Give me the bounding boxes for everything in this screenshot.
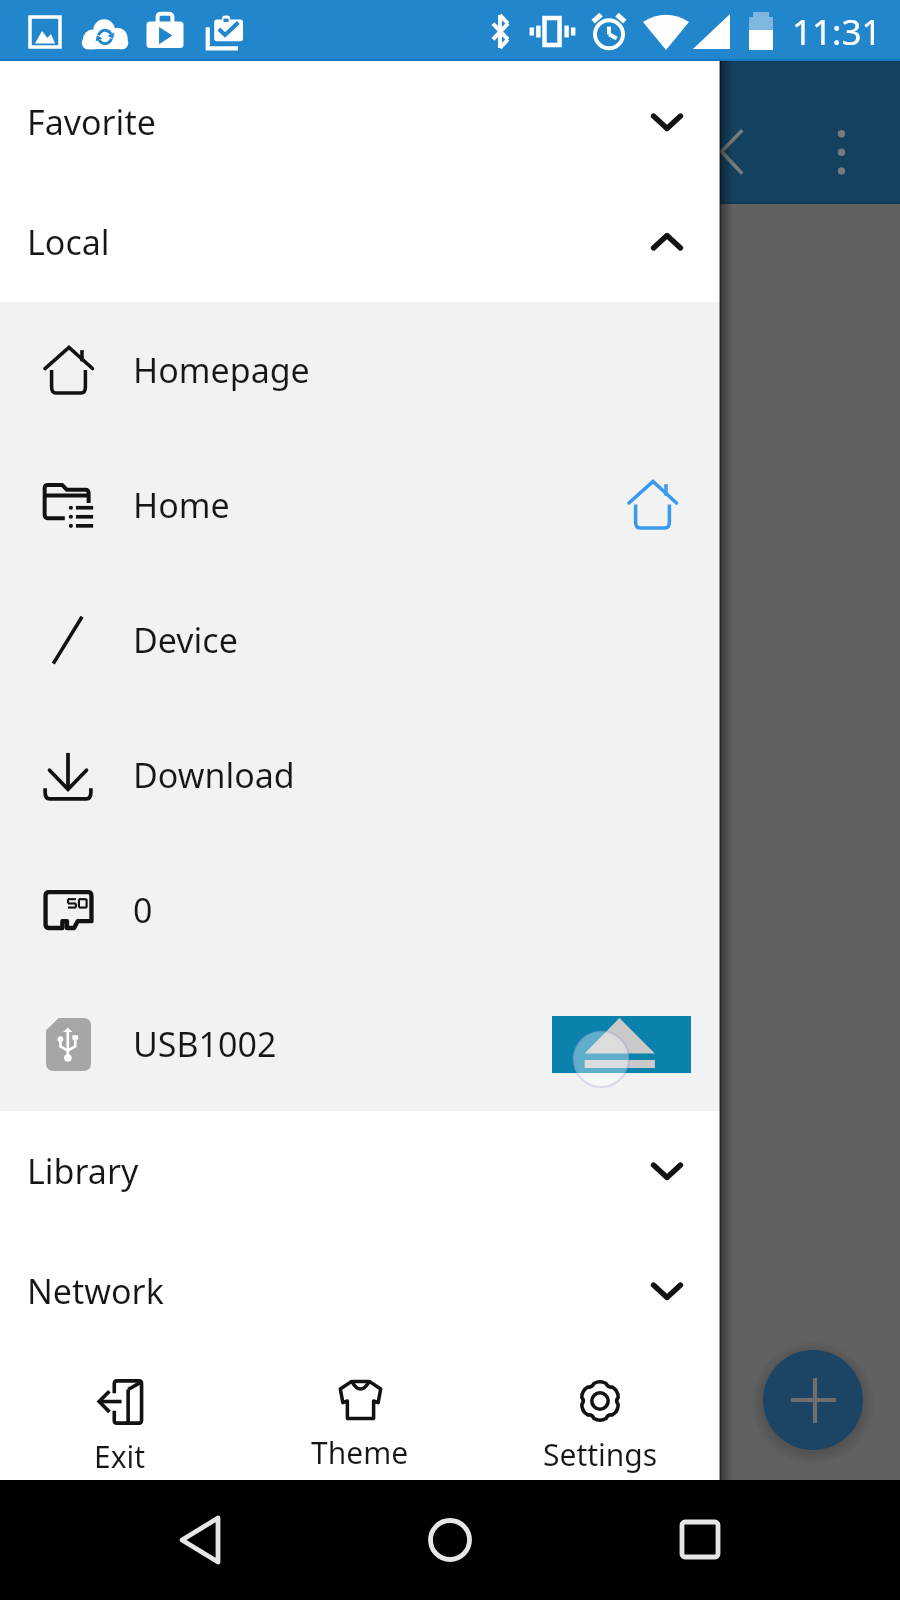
staticText: Network: [27, 1268, 164, 1314]
button[interactable]: Download: [0, 707, 720, 842]
staticText: 0: [133, 887, 153, 933]
staticText: Homepage: [133, 347, 310, 393]
staticText: 11:31: [792, 8, 882, 56]
staticText: Library: [27, 1148, 139, 1194]
staticText: Download: [133, 752, 295, 798]
button[interactable]: Homepage: [0, 302, 720, 437]
button[interactable]: Settings: [480, 1351, 720, 1480]
button[interactable]: 0: [0, 842, 720, 977]
staticText: Device: [133, 617, 238, 663]
button[interactable]: Device: [0, 572, 720, 707]
button[interactable]: Theme: [240, 1351, 480, 1480]
button[interactable]: Exit: [0, 1351, 240, 1480]
staticText: Settings: [543, 1434, 658, 1475]
staticText: Exit: [94, 1436, 146, 1477]
button[interactable]: Library: [0, 1111, 720, 1231]
button[interactable]: Network: [0, 1231, 720, 1351]
button[interactable]: Local: [0, 182, 720, 302]
staticText: Home: [133, 482, 230, 528]
button[interactable]: Eject USB: [552, 1016, 691, 1073]
button[interactable]: Add: [763, 1350, 863, 1450]
button[interactable]: USB1002: [0, 977, 720, 1111]
staticText: Theme: [311, 1432, 409, 1473]
staticText: Favorite: [27, 99, 156, 145]
staticText: USB1002: [133, 1021, 277, 1067]
staticText: Local: [27, 219, 110, 265]
button[interactable]: Home: [0, 437, 720, 572]
button[interactable]: Favorite: [0, 62, 720, 182]
